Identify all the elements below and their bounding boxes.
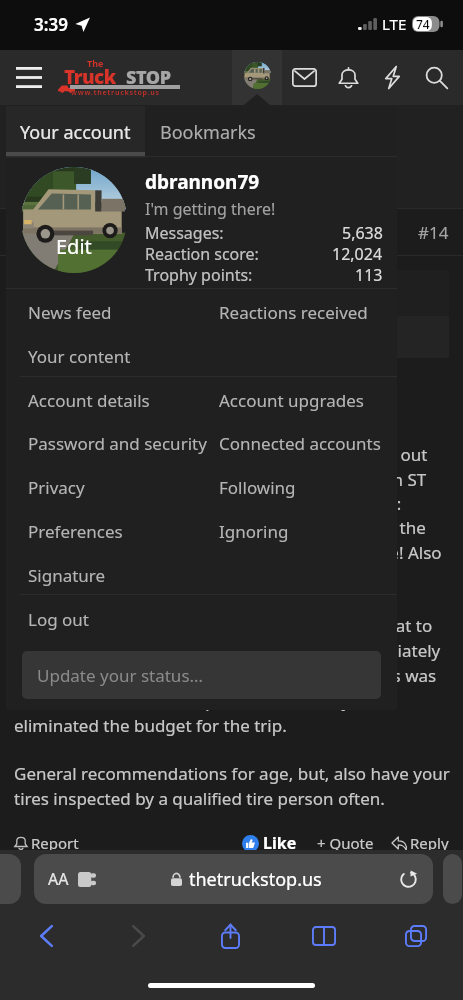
staticText: Took my camper in this spring to have it… bbox=[14, 614, 433, 637]
staticText: Account upgrades bbox=[219, 389, 364, 412]
staticText: LTE bbox=[382, 14, 407, 34]
staticText: check for dry rot. bbox=[14, 565, 150, 588]
staticText: Privacy bbox=[28, 476, 85, 499]
button[interactable]: Back bbox=[0, 908, 92, 964]
button[interactable]: Reply bbox=[392, 833, 449, 853]
button[interactable]: Your account bbox=[6, 106, 145, 158]
staticText: Truck bbox=[64, 64, 116, 90]
staticText: 74 bbox=[416, 16, 430, 32]
button[interactable]: Edit avatar bbox=[21, 167, 127, 273]
button[interactable]: Bookmarks bbox=[145, 106, 281, 158]
button[interactable]: Log out bbox=[6, 597, 219, 641]
button[interactable]: Tabs bbox=[370, 908, 463, 964]
staticText: Report bbox=[31, 833, 79, 853]
staticText: get new tires and every one of them was … bbox=[14, 639, 441, 662]
other: Reload bbox=[397, 868, 419, 890]
staticText: 113 bbox=[355, 264, 383, 285]
button[interactable]: Signature bbox=[6, 553, 219, 597]
button[interactable]: Share bbox=[184, 908, 277, 964]
staticText: Reply bbox=[410, 833, 449, 853]
staticText: Connected accounts bbox=[219, 432, 381, 455]
staticText: Your content bbox=[28, 345, 131, 368]
staticText: Signature bbox=[28, 564, 106, 587]
staticText: The bbox=[87, 57, 104, 69]
button[interactable]: Bookmark bbox=[374, 217, 404, 247]
staticText: 12,024 bbox=[332, 243, 383, 264]
staticText: AA bbox=[48, 868, 69, 890]
staticText: www.thetruckstop.us bbox=[71, 88, 160, 98]
staticText: Reaction score: bbox=[145, 243, 259, 264]
staticText: Password and security bbox=[28, 432, 207, 455]
staticText: Old tires, even with plenty of tread, ca… bbox=[14, 443, 428, 466]
button[interactable]: Reactions received bbox=[219, 290, 397, 334]
button[interactable]: Connected accounts bbox=[219, 421, 397, 465]
button[interactable]: Your content bbox=[6, 334, 219, 378]
staticText: trailer tire with plenty of tread showin… bbox=[14, 492, 402, 515]
button[interactable]: Preferences bbox=[6, 509, 219, 553]
staticText: News feed bbox=[28, 301, 112, 324]
staticText: Account details bbox=[28, 389, 150, 412]
button[interactable]: Menu bbox=[0, 50, 57, 105]
staticText: General recommendations for age, but, al… bbox=[14, 762, 450, 785]
staticText: Your account bbox=[20, 120, 131, 145]
staticText: Bookmarks bbox=[160, 120, 256, 145]
button[interactable]: Password and security bbox=[6, 421, 219, 465]
staticText: thetruckstop.us bbox=[189, 867, 322, 892]
staticText: more than I wanted to spend and it nearl… bbox=[14, 689, 351, 712]
staticText: + Quote bbox=[317, 833, 374, 853]
staticText: Log out bbox=[28, 608, 89, 631]
button[interactable]: Ignoring bbox=[219, 509, 397, 553]
button[interactable]: Report bbox=[14, 833, 79, 853]
staticText: Edit bbox=[56, 233, 92, 260]
button[interactable]: Like bbox=[242, 832, 297, 854]
staticText: Ignoring bbox=[219, 520, 289, 543]
button[interactable]: Alerts bbox=[326, 50, 370, 105]
button[interactable]: AA bbox=[34, 854, 433, 904]
button[interactable]: Following bbox=[219, 465, 397, 509]
staticText: I'm getting there! bbox=[145, 198, 276, 220]
button[interactable]: Inbox bbox=[282, 50, 326, 105]
staticText: Reactions received bbox=[219, 301, 368, 324]
staticText: Check the date code on the sidewall of t… bbox=[14, 516, 426, 539]
staticText: Update your status… bbox=[37, 664, 203, 687]
staticText: #14 bbox=[418, 221, 449, 244]
button[interactable]: Update your status… bbox=[22, 651, 381, 699]
staticText: STOP bbox=[126, 65, 171, 90]
button[interactable]: News feed bbox=[6, 290, 219, 334]
staticText: 5,638 bbox=[342, 222, 383, 243]
staticText: eliminated the budget for the trip. bbox=[14, 714, 287, 737]
button[interactable]: What's new bbox=[370, 50, 414, 105]
button[interactable]: Your account bbox=[232, 50, 282, 105]
staticText: Trophy points: bbox=[145, 264, 253, 285]
staticText: Messages: bbox=[145, 222, 224, 243]
staticText: dbrannon79 bbox=[145, 169, 260, 195]
staticText: rejected because of dry rot. The cost of… bbox=[14, 664, 437, 687]
staticText: and dangerous. Seen several of them blow… bbox=[14, 468, 427, 491]
button[interactable]: Account details bbox=[6, 378, 219, 422]
button[interactable]: Account upgrades bbox=[219, 378, 397, 422]
staticText: Like bbox=[263, 832, 297, 854]
staticText: Preferences bbox=[28, 520, 123, 543]
staticText: 3:39 bbox=[34, 13, 68, 36]
button[interactable]: Privacy bbox=[6, 465, 219, 509]
staticText: tires inspected by a qualified tire pers… bbox=[14, 787, 385, 810]
button[interactable]: + Quote bbox=[317, 833, 374, 853]
button[interactable]: Forward bbox=[92, 908, 184, 964]
button[interactable]: Bookmarks bbox=[277, 908, 370, 964]
button[interactable]: Search bbox=[414, 50, 458, 105]
staticText: four digit code is the week and year it … bbox=[14, 541, 442, 564]
staticText: Following bbox=[219, 476, 296, 499]
